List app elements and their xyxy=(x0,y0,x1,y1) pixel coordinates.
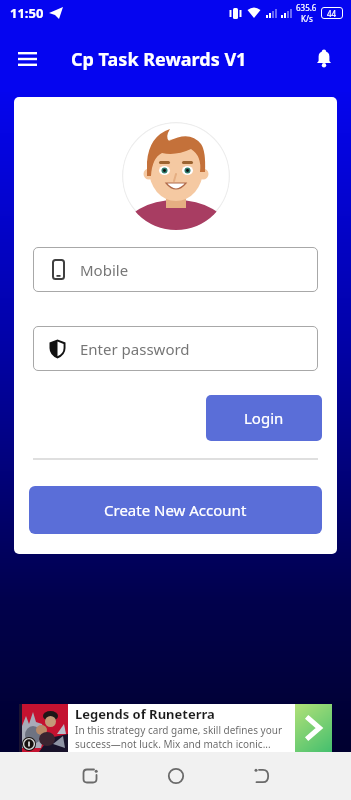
staticText: Mobile xyxy=(80,260,129,280)
button[interactable] xyxy=(301,36,347,82)
button[interactable]: Enter password xyxy=(33,326,318,371)
button[interactable] xyxy=(295,704,332,752)
button[interactable] xyxy=(253,767,271,785)
staticText: Enter password xyxy=(80,339,190,359)
button[interactable] xyxy=(0,32,54,86)
staticText: Legends of Runeterra xyxy=(75,705,215,723)
button[interactable] xyxy=(81,767,99,785)
staticText: Login xyxy=(244,408,284,428)
staticText: Create New Account xyxy=(104,500,247,520)
staticText: 635.6 xyxy=(296,2,317,13)
staticText: success—not luck. Mix and match iconic..… xyxy=(75,737,271,751)
staticText: 44 xyxy=(327,8,337,19)
button[interactable] xyxy=(167,767,185,785)
button[interactable]: Login xyxy=(206,395,322,441)
staticText: In this strategy card game, skill define… xyxy=(75,723,283,737)
staticText: 11:50 xyxy=(10,4,44,22)
staticText: K/s xyxy=(301,13,313,24)
button[interactable]: Mobile xyxy=(33,247,318,292)
button[interactable]: Legends of Runeterra xyxy=(0,704,351,752)
button[interactable]: Create New Account xyxy=(29,486,322,534)
staticText: Cp Task Rewards V1 xyxy=(71,47,247,72)
